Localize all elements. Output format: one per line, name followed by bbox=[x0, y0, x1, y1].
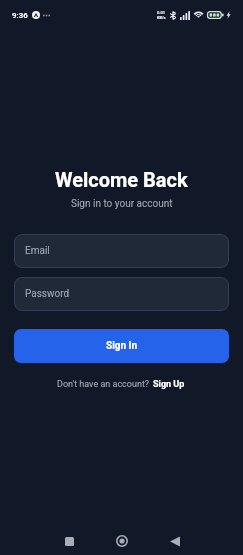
staticText: Password bbox=[25, 288, 70, 300]
staticText: Email bbox=[25, 245, 50, 257]
button[interactable]: Password bbox=[14, 277, 229, 311]
button[interactable]: Sign Up bbox=[152, 377, 186, 392]
staticText: Welcome Back bbox=[55, 168, 188, 191]
staticText: Sign In bbox=[106, 340, 138, 352]
button[interactable]: Email bbox=[14, 234, 229, 268]
staticText: Sign in to your account bbox=[71, 198, 173, 210]
button[interactable]: Home bbox=[108, 527, 136, 555]
button[interactable]: Sign In bbox=[14, 329, 229, 363]
staticText: Sign Up bbox=[153, 379, 185, 390]
staticText: KB/s bbox=[157, 15, 166, 20]
staticText: 0.01 bbox=[157, 10, 166, 15]
button[interactable]: Recent apps bbox=[55, 527, 83, 555]
button[interactable]: Back bbox=[161, 527, 189, 555]
staticText: Don't have an account? bbox=[57, 379, 152, 390]
staticText: 9:36 bbox=[12, 11, 28, 20]
